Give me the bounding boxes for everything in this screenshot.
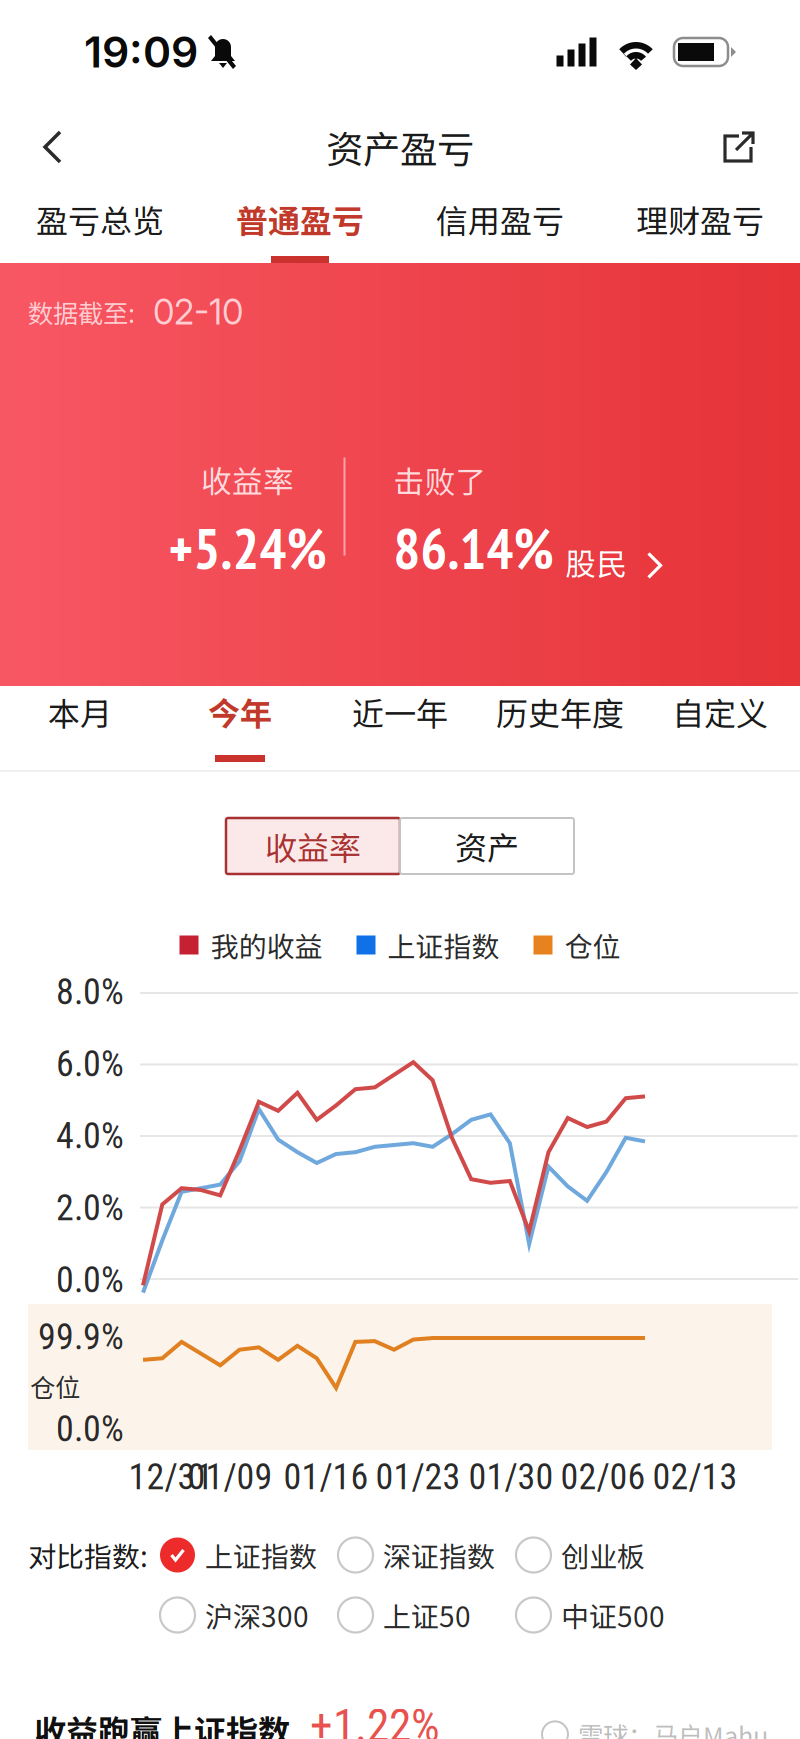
button[interactable]: 分享 — [700, 108, 778, 186]
staticText: 盈亏总览 — [36, 196, 164, 242]
staticText: 02/06 — [560, 1456, 645, 1498]
staticText: 创业板 — [561, 1535, 645, 1575]
staticText: 01/09 — [187, 1456, 272, 1498]
staticText: 上证指数 — [387, 925, 499, 965]
staticText: 上证指数 — [205, 1535, 317, 1575]
staticText: 8.0% — [56, 971, 124, 1013]
staticText: 99.9% — [38, 1316, 124, 1358]
staticText: 普通盈亏 — [236, 196, 364, 242]
staticText: 01/23 — [375, 1456, 460, 1498]
button[interactable]: 上证50 — [338, 1587, 516, 1643]
button[interactable]: 资产 — [400, 818, 574, 874]
staticText: 数据截至: — [28, 294, 135, 330]
staticText: 近一年 — [352, 689, 448, 735]
button[interactable]: 普通盈亏 — [200, 190, 400, 263]
staticText: 19:09 — [84, 26, 198, 78]
button[interactable]: 近一年 — [320, 686, 480, 770]
staticText: 击败了 — [393, 458, 486, 502]
staticText: 0.0% — [56, 1408, 124, 1450]
staticText: 资产盈亏 — [326, 120, 474, 174]
staticText: 02-10 — [153, 291, 243, 333]
staticText: 理财盈亏 — [636, 196, 764, 242]
staticText: 收益率 — [201, 458, 294, 502]
staticText: +5.24% — [168, 512, 326, 584]
button[interactable]: 盈亏总览 — [0, 190, 200, 263]
staticText: 01/16 — [283, 1456, 368, 1498]
button[interactable]: 今年 — [160, 686, 320, 770]
staticText: 资产 — [455, 823, 519, 869]
button[interactable]: 沪深300 — [160, 1587, 338, 1643]
staticText: 收益率 — [265, 823, 361, 869]
staticText: 对比指数: — [28, 1535, 148, 1575]
button[interactable]: 理财盈亏 — [600, 190, 800, 263]
button[interactable]: 上证指数 — [160, 1527, 338, 1583]
button[interactable]: 本月 — [0, 686, 160, 770]
staticText: +1.22% — [310, 1700, 440, 1739]
button[interactable]: 收益率 — [226, 818, 400, 874]
staticText: 2.0% — [56, 1187, 124, 1229]
button[interactable]: 深证指数 — [338, 1527, 516, 1583]
button[interactable]: 自定义 — [640, 686, 800, 770]
staticText: 12/31 — [128, 1456, 213, 1498]
staticText: 仓位 — [564, 925, 620, 965]
staticText: 信用盈亏 — [436, 196, 564, 242]
button[interactable]: 历史年度 — [480, 686, 640, 770]
staticText: 6.0% — [56, 1043, 124, 1085]
staticText: 沪深300 — [205, 1595, 309, 1635]
button[interactable]: 返回 — [20, 108, 86, 186]
staticText: 历史年度 — [496, 689, 624, 735]
staticText: 4.0% — [56, 1115, 124, 1157]
staticText: 上证50 — [383, 1595, 471, 1635]
staticText: 01/30 — [468, 1456, 553, 1498]
staticText: 深证指数 — [383, 1535, 495, 1575]
staticText: 02/13 — [652, 1456, 737, 1498]
button[interactable]: 创业板 — [516, 1527, 676, 1583]
staticText: 本月 — [48, 689, 112, 735]
staticText: 收益跑赢上证指数 — [34, 1706, 290, 1739]
staticText: 我的收益 — [210, 925, 322, 965]
button[interactable]: 信用盈亏 — [400, 190, 600, 263]
staticText: 中证500 — [561, 1595, 665, 1635]
button[interactable]: 中证500 — [516, 1587, 676, 1643]
staticText: 雪球：马户Mahu — [578, 1716, 768, 1739]
staticText: 0.0% — [56, 1259, 124, 1301]
staticText: 股民 — [565, 540, 627, 584]
staticText: 自定义 — [672, 689, 768, 735]
staticText: 86.14% — [393, 512, 553, 584]
staticText: 今年 — [208, 689, 272, 735]
staticText: 仓位 — [30, 1368, 80, 1404]
